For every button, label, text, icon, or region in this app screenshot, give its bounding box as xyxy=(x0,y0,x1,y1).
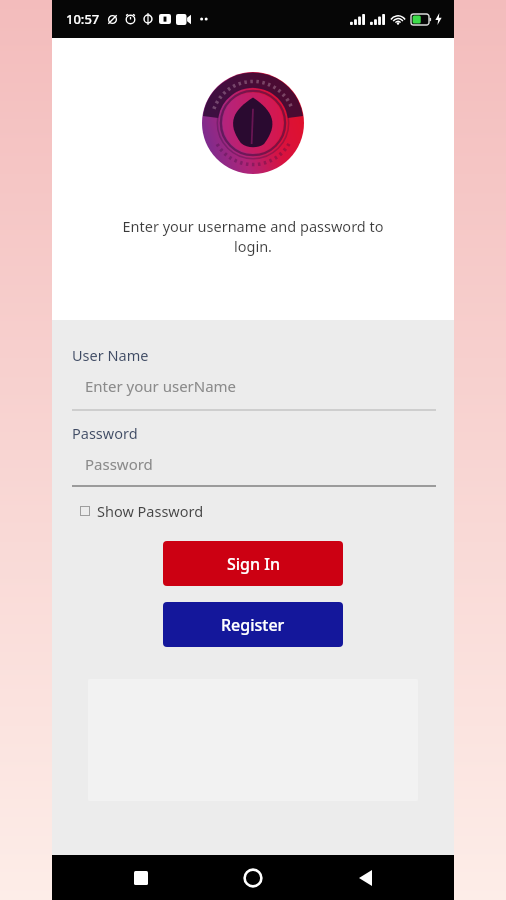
staticText: Enter your username and password to logi… xyxy=(52,216,454,257)
button[interactable]: Sign In xyxy=(163,541,343,586)
button[interactable]: Home xyxy=(197,855,309,900)
staticText: Password xyxy=(72,423,138,443)
staticText: Register xyxy=(221,614,285,636)
staticText: User Name xyxy=(72,345,149,365)
staticText: 10:57 xyxy=(66,10,100,28)
staticText: Password xyxy=(85,454,153,474)
button[interactable]: Back xyxy=(309,855,421,900)
staticText: Sign In xyxy=(227,553,280,575)
staticText: Show Password xyxy=(97,501,204,521)
staticText: Enter your userName xyxy=(85,376,237,396)
button[interactable]: Register xyxy=(163,602,343,647)
button[interactable]: Recent apps xyxy=(85,855,197,900)
button[interactable]: Show Password xyxy=(80,501,204,521)
